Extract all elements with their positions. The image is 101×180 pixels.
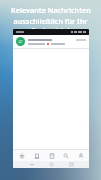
button[interactable]: Saved bbox=[45, 150, 58, 161]
other: Back bbox=[30, 164, 34, 165]
button[interactable]: Library bbox=[30, 150, 43, 161]
other: Home bbox=[50, 163, 53, 166]
staticText: ausschließlich für Ihr Fachgebiet bbox=[3, 16, 98, 35]
button[interactable]: Profile bbox=[74, 150, 87, 161]
staticText: Relevante Nachrichten bbox=[11, 5, 91, 15]
button[interactable]: Feed bbox=[15, 150, 28, 161]
other: Recents bbox=[70, 163, 73, 166]
button[interactable]: Search bbox=[59, 150, 72, 161]
button[interactable] bbox=[13, 35, 89, 48]
